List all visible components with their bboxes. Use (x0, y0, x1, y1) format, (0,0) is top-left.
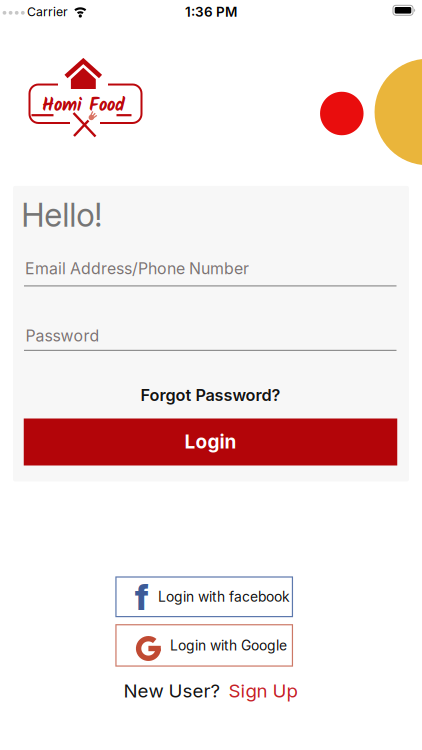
staticText: Login (184, 430, 236, 453)
staticText: Login with facebook (158, 588, 290, 605)
staticText: f (135, 576, 149, 618)
staticText: Hello! (21, 195, 102, 234)
staticText: Homi Food (42, 91, 125, 120)
staticText: New User? (123, 679, 220, 702)
staticText: Login with Google (170, 637, 287, 654)
staticText: Email Address/Phone Number (25, 259, 249, 278)
staticText: 1:36 PM (185, 4, 237, 20)
staticText: Sign Up (228, 679, 297, 702)
staticText: Forgot Password? (140, 385, 280, 405)
staticText: Carrier (27, 4, 68, 19)
staticText: Password (25, 326, 99, 345)
